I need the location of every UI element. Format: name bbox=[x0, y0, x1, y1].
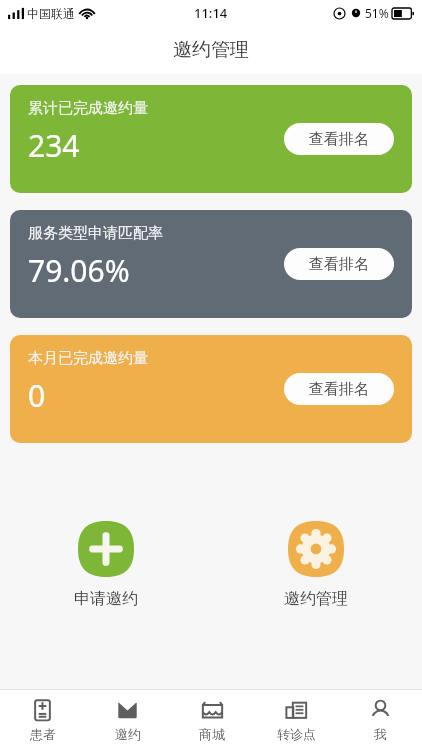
staticText: 查看排名 bbox=[309, 380, 369, 399]
staticText: 查看排名 bbox=[309, 255, 369, 274]
staticText: 51% bbox=[365, 5, 389, 21]
button[interactable]: 患者 bbox=[0, 690, 85, 750]
button[interactable]: 商城 bbox=[170, 690, 254, 750]
button[interactable]: 查看排名 bbox=[284, 123, 394, 155]
other: 申请邀约 bbox=[78, 521, 134, 577]
button[interactable]: 我 bbox=[338, 690, 422, 750]
staticText: 邀约管理 bbox=[173, 38, 249, 62]
button[interactable]: 查看排名 bbox=[284, 248, 394, 280]
staticText: 11:14 bbox=[194, 4, 228, 22]
button[interactable]: 邀约管理 bbox=[241, 521, 391, 609]
staticText: 累计已完成邀约量 bbox=[28, 99, 148, 118]
button[interactable]: 转诊点 bbox=[254, 690, 338, 750]
staticText: 服务类型申请匹配率 bbox=[28, 224, 163, 243]
button[interactable]: 累计已完成邀约量 bbox=[10, 85, 412, 193]
staticText: 0 bbox=[28, 375, 46, 416]
staticText: 邀约管理 bbox=[284, 589, 348, 609]
staticText: 商城 bbox=[199, 726, 225, 742]
button[interactable]: 申请邀约 bbox=[31, 521, 181, 609]
staticText: 我 bbox=[374, 726, 387, 742]
staticText: 转诊点 bbox=[277, 726, 316, 742]
staticText: 邀约 bbox=[115, 726, 141, 742]
button[interactable]: 查看排名 bbox=[284, 373, 394, 405]
button[interactable]: 服务类型申请匹配率 bbox=[10, 210, 412, 318]
other: 邀约管理 bbox=[288, 521, 344, 577]
staticText: 申请邀约 bbox=[74, 589, 138, 609]
staticText: 患者 bbox=[30, 726, 56, 742]
staticText: 79.06% bbox=[28, 250, 130, 291]
staticText: 中国联通 bbox=[27, 6, 75, 21]
button[interactable]: 本月已完成邀约量 bbox=[10, 335, 412, 443]
staticText: 本月已完成邀约量 bbox=[28, 349, 148, 368]
button[interactable]: 邀约 bbox=[85, 690, 170, 750]
staticText: 查看排名 bbox=[309, 130, 369, 149]
staticText: 234 bbox=[28, 125, 80, 166]
